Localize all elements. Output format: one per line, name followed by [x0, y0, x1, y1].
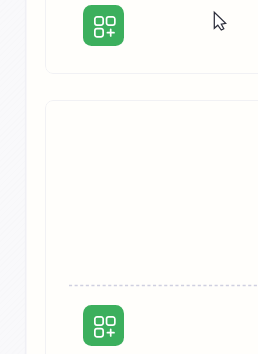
button[interactable] [45, 0, 258, 74]
button[interactable] [45, 100, 258, 354]
button[interactable]: Add widget [83, 305, 124, 346]
button[interactable]: Add widget [83, 5, 124, 46]
